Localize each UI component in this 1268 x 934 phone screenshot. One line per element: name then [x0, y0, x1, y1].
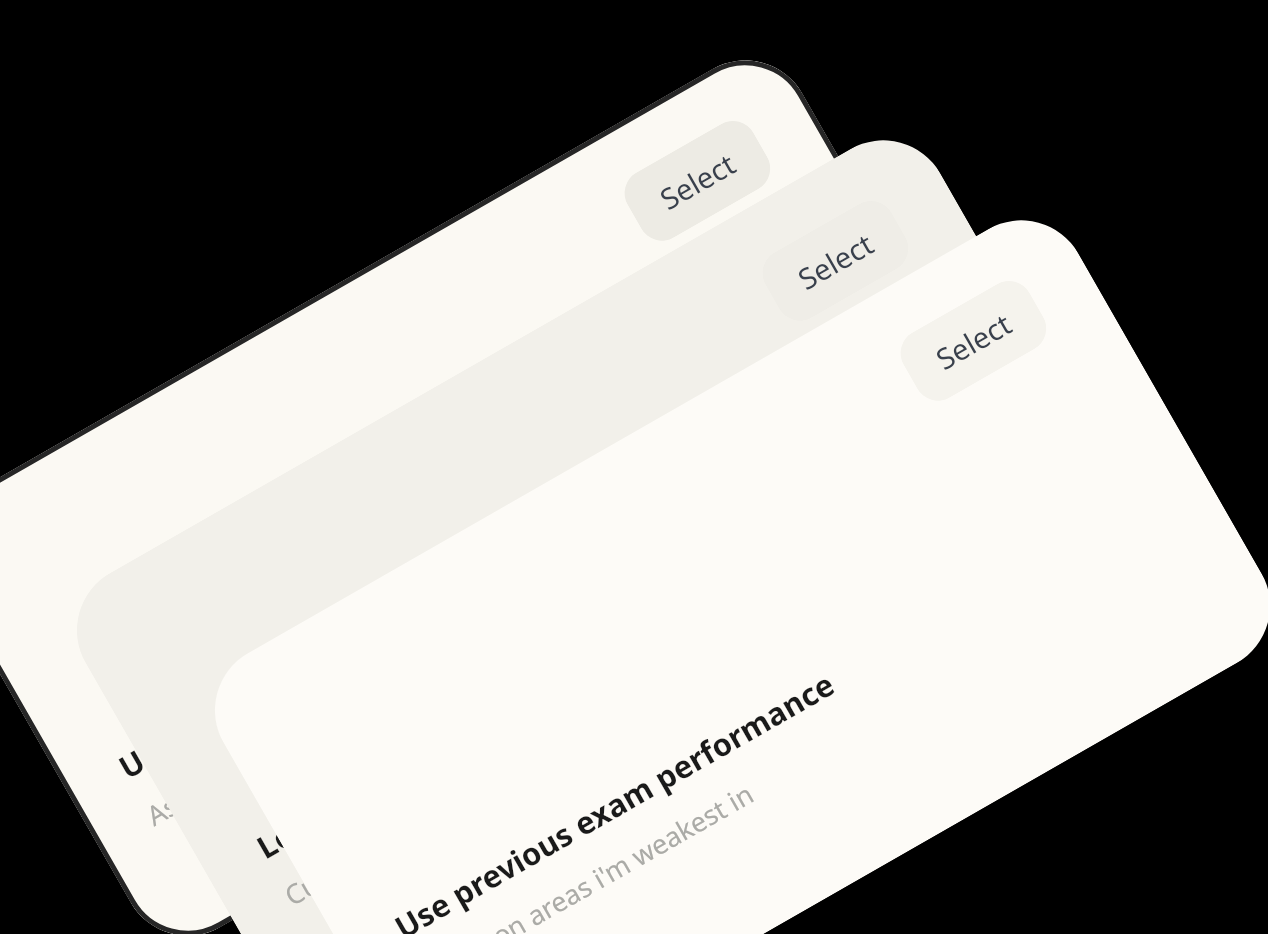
button[interactable]: Select	[892, 272, 1055, 409]
button[interactable]: Use previous exam performance	[191, 196, 1268, 934]
button[interactable]: Let me choose	[53, 116, 1156, 934]
staticText: As described in the official exam guide	[140, 559, 582, 834]
staticText: Use official exam weighting	[111, 538, 504, 788]
staticText: Focus on areas i'm weakest in	[416, 775, 760, 934]
button[interactable]: Use official exam weighting	[0, 36, 1018, 934]
button[interactable]: Select	[754, 192, 917, 329]
staticText: Select	[653, 144, 742, 218]
staticText: Select	[929, 304, 1018, 378]
button[interactable]: Select	[616, 112, 779, 249]
staticText: Customize exactly what sections to focus…	[278, 605, 779, 914]
staticText: Use previous exam performance	[387, 663, 842, 934]
staticText: Select	[791, 224, 880, 298]
staticText: Let me choose	[249, 720, 464, 868]
